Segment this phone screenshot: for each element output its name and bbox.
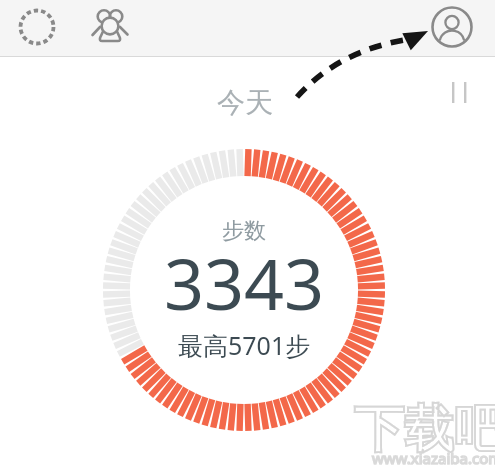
staticText: 步数 — [222, 217, 266, 245]
button[interactable]: 今天 — [0, 85, 495, 119]
staticText: 3343 — [164, 235, 325, 315]
staticText: 今天 — [217, 85, 273, 119]
button[interactable] — [430, 5, 474, 49]
staticText: 下载吧 — [354, 398, 495, 461]
staticText: www.xiazaiba.com — [372, 448, 495, 468]
staticText: 最高5701步 — [178, 328, 311, 362]
button[interactable] — [17, 7, 57, 47]
button[interactable] — [88, 6, 132, 50]
